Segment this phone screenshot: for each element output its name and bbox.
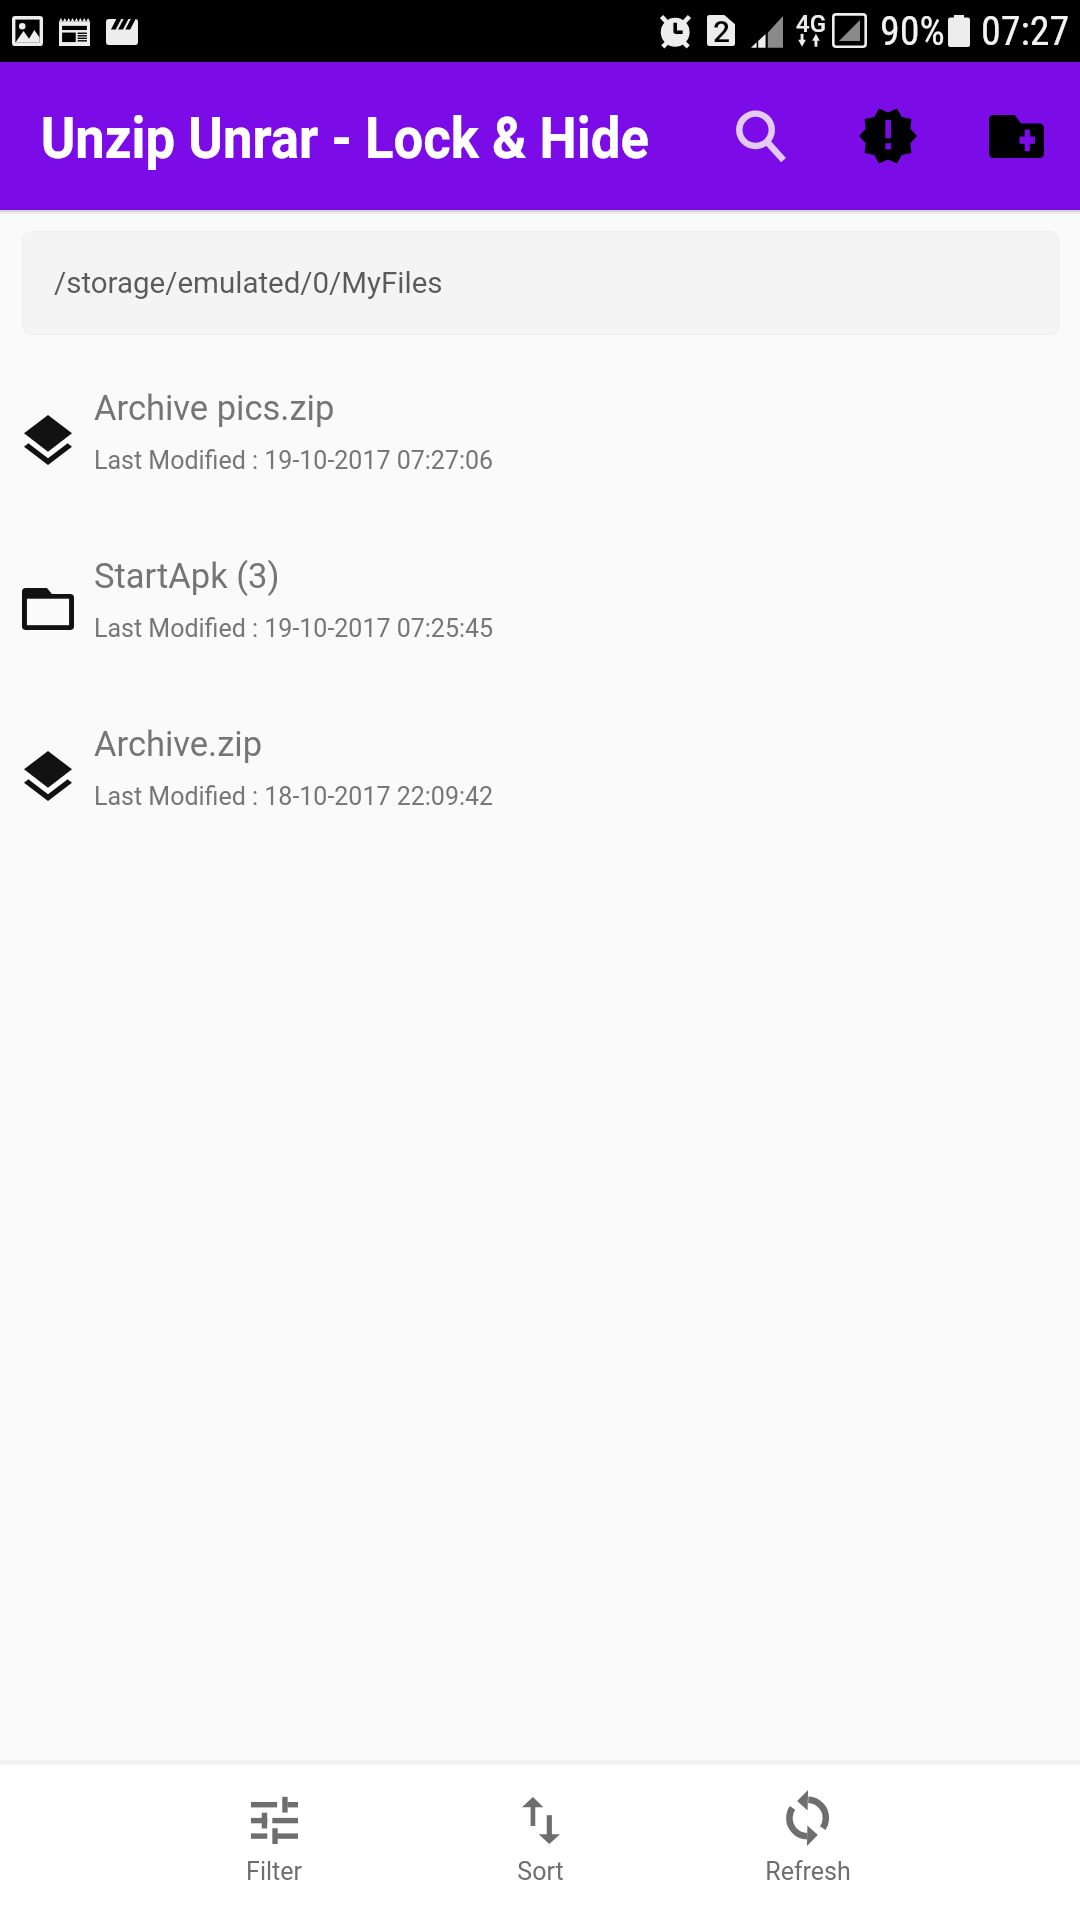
staticText: Last Modified : 19-10-2017 07:27:06 (94, 446, 494, 475)
button[interactable]: New folder (952, 72, 1080, 200)
staticText: StartApk (3) (94, 556, 280, 596)
staticText: 07:27 (981, 8, 1070, 55)
button[interactable]: StartApk (3) (0, 521, 1080, 689)
staticText: Archive.zip (94, 724, 263, 764)
button[interactable]: Search (696, 72, 824, 200)
staticText: 4G (796, 10, 826, 38)
staticText: Last Modified : 18-10-2017 22:09:42 (94, 782, 494, 811)
button[interactable]: Archive.zip (0, 689, 1080, 857)
button[interactable]: Archive pics.zip (0, 353, 1080, 521)
staticText: Filter (246, 1857, 302, 1886)
button[interactable]: /storage/emulated/0/MyFiles (22, 231, 1059, 335)
button[interactable]: Sort (407, 1766, 674, 1920)
button[interactable]: Refresh (674, 1766, 941, 1920)
staticText: 2 (713, 14, 731, 49)
staticText: Archive pics.zip (94, 388, 335, 428)
staticText: 90% (880, 8, 945, 55)
staticText: Last Modified : 19-10-2017 07:25:45 (94, 614, 494, 643)
staticText: Refresh (765, 1857, 851, 1886)
staticText: /storage/emulated/0/MyFiles (54, 266, 443, 301)
button[interactable]: Filter (140, 1766, 407, 1920)
staticText: Unzip Unrar - Lock & Hide (41, 105, 649, 172)
staticText: Sort (517, 1857, 564, 1886)
button[interactable]: Alert (824, 72, 952, 200)
